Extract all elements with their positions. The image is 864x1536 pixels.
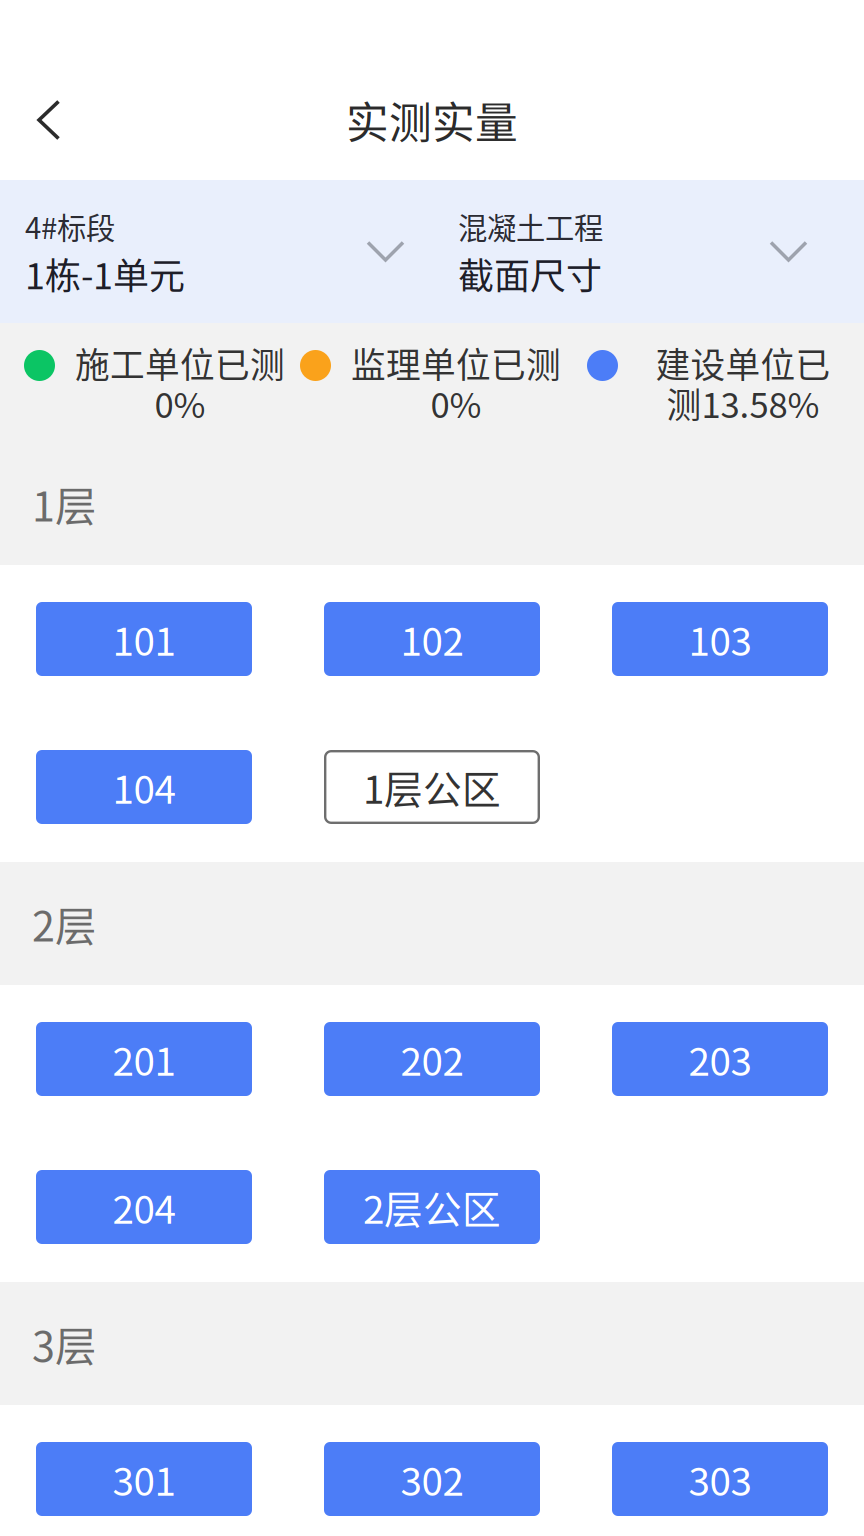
staticText: 1层 [32,474,96,533]
staticText: 202 [400,1031,463,1087]
staticText: 3层 [32,1314,96,1373]
staticText: 实测实量 [346,89,518,151]
staticText: 4#标段 [25,205,115,247]
staticText: 混凝土工程 [458,205,603,247]
staticText: 204 [112,1179,175,1235]
button[interactable]: 2层公区 [324,1170,540,1244]
button[interactable]: 203 [612,1022,828,1096]
staticText: 监理单位已测 [351,338,561,388]
staticText: 102 [400,611,463,667]
staticText: 101 [112,611,175,667]
button[interactable]: 301 [36,1442,252,1516]
staticText: 2层 [32,894,96,953]
staticText: 测13.58% [666,378,819,428]
button[interactable]: 4#标段 [0,180,432,323]
staticText: 施工单位已测 [75,338,285,388]
staticText: 1层公区 [363,759,501,815]
staticText: 103 [688,611,751,667]
staticText: 建设单位已 [655,338,830,388]
button[interactable]: 303 [612,1442,828,1516]
staticText: 0% [154,378,205,428]
button[interactable]: 204 [36,1170,252,1244]
button[interactable]: 201 [36,1022,252,1096]
staticText: 1栋-1单元 [25,247,185,300]
staticText: 104 [112,759,175,815]
button[interactable]: 混凝土工程 [432,180,864,323]
button[interactable]: 104 [36,750,252,824]
staticText: 0% [430,378,481,428]
staticText: 截面尺寸 [458,247,602,300]
button[interactable]: 1层公区 [324,750,540,824]
button[interactable]: 101 [36,602,252,676]
staticText: 201 [112,1031,175,1087]
button[interactable]: Back [12,78,86,162]
staticText: 302 [400,1451,463,1507]
staticText: 203 [688,1031,751,1087]
button[interactable]: 302 [324,1442,540,1516]
button[interactable]: 202 [324,1022,540,1096]
staticText: 2层公区 [363,1179,501,1235]
staticText: 303 [688,1451,751,1507]
staticText: 301 [112,1451,175,1507]
button[interactable]: 102 [324,602,540,676]
button[interactable]: 103 [612,602,828,676]
